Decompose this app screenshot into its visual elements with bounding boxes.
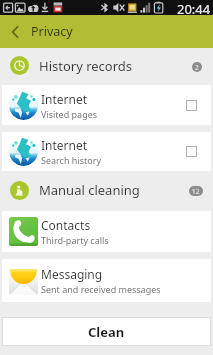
button[interactable]: Manual cleaning <box>0 171 213 211</box>
button[interactable]: Internet <box>2 85 211 125</box>
staticText: 2 <box>195 63 199 72</box>
button[interactable]: Messaging <box>2 259 211 302</box>
staticText: 20:44 <box>177 0 211 15</box>
staticText: Contacts <box>41 217 91 233</box>
staticText: Messaging <box>41 266 103 282</box>
staticText: Visited pages <box>41 108 98 120</box>
button[interactable]: Clean <box>2 317 211 346</box>
staticText: 12 <box>192 187 200 196</box>
staticText: Clean <box>88 323 125 341</box>
staticText: Search history <box>41 154 102 166</box>
staticText: Manual cleaning <box>39 181 140 199</box>
button[interactable]: Select <box>186 146 197 157</box>
staticText: Internet <box>41 91 88 107</box>
staticText: Sent and received messages <box>41 283 161 295</box>
staticText: Third-party calls <box>41 234 109 246</box>
staticText: Internet <box>41 137 88 153</box>
staticText: History records <box>39 57 133 75</box>
button[interactable]: Contacts <box>2 211 211 252</box>
button[interactable]: History records <box>0 48 213 85</box>
button[interactable]: Back <box>0 15 30 48</box>
button[interactable]: Internet <box>2 132 211 171</box>
staticText: Privacy <box>31 23 73 40</box>
button[interactable]: Select <box>186 100 197 111</box>
